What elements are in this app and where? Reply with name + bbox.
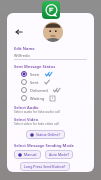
staticText: Select Message Sending Mode (14, 143, 74, 148)
button[interactable]: Select Video (14, 117, 87, 126)
staticText: Select Video (14, 117, 39, 122)
staticText: Edit Name (14, 46, 35, 51)
button[interactable]: Sent (21, 79, 94, 85)
button[interactable]: App icon (42, 1, 60, 19)
staticText: Auto Mode? (49, 152, 69, 157)
button[interactable]: Status Online? (26, 130, 65, 139)
staticText: Manual (24, 152, 37, 157)
button[interactable]: Wilfredo (14, 53, 87, 60)
button[interactable]: Select Audio (14, 105, 87, 114)
staticText: Long Press Send Button? (24, 164, 66, 169)
button[interactable]: Auto Mode? (45, 150, 73, 159)
button[interactable]: Manual (14, 150, 41, 159)
button[interactable]: Long Press Send Button? (20, 162, 70, 171)
button[interactable]: Delivered (21, 87, 94, 93)
staticText: Select Audio (14, 105, 39, 110)
staticText: Delivered (30, 88, 48, 93)
staticText: Sent Message Status (14, 64, 56, 69)
staticText: Seen (30, 72, 40, 77)
staticText: Wilfredo (14, 53, 30, 58)
staticText: Select video for fake video call (14, 122, 59, 126)
button[interactable]: Seen (21, 71, 94, 77)
staticText: Select audio for fake audio call (14, 110, 60, 114)
staticText: Waiting (30, 96, 45, 101)
button[interactable]: Profile photo (43, 22, 63, 42)
staticText: Sent (30, 80, 39, 85)
button[interactable]: Waiting (21, 95, 94, 101)
staticText: Status Online? (36, 132, 61, 137)
button[interactable]: Back (13, 26, 25, 38)
